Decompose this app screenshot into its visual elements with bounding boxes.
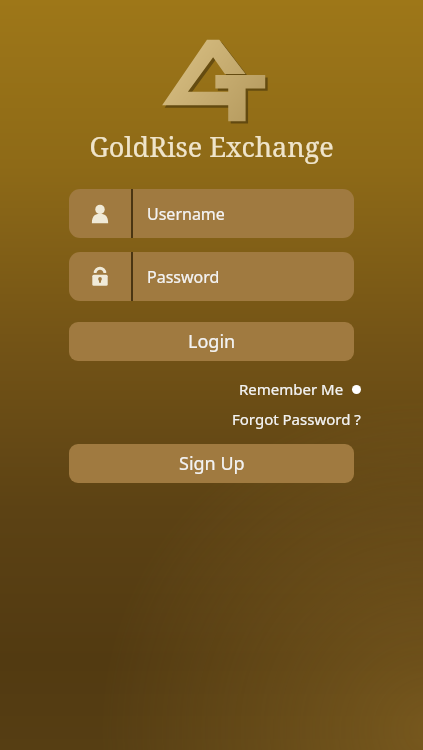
other: Password	[69, 252, 131, 301]
staticText: Forgot Password ?	[232, 409, 361, 429]
other: Username	[69, 189, 131, 238]
staticText: Username	[147, 203, 225, 225]
button[interactable]: Username	[69, 189, 354, 238]
staticText: Password	[147, 266, 220, 288]
button[interactable]: Forgot Password ?	[226, 405, 367, 433]
staticText: Login	[188, 329, 236, 354]
staticText: Sign Up	[179, 451, 245, 476]
button[interactable]: Password	[69, 252, 354, 301]
button[interactable]: Login	[69, 322, 354, 361]
staticText: Remember Me	[239, 379, 344, 399]
button[interactable]: Sign Up	[69, 444, 354, 483]
staticText: GoldRise Exchange	[89, 128, 334, 165]
button[interactable]: Remember Me	[233, 375, 367, 403]
